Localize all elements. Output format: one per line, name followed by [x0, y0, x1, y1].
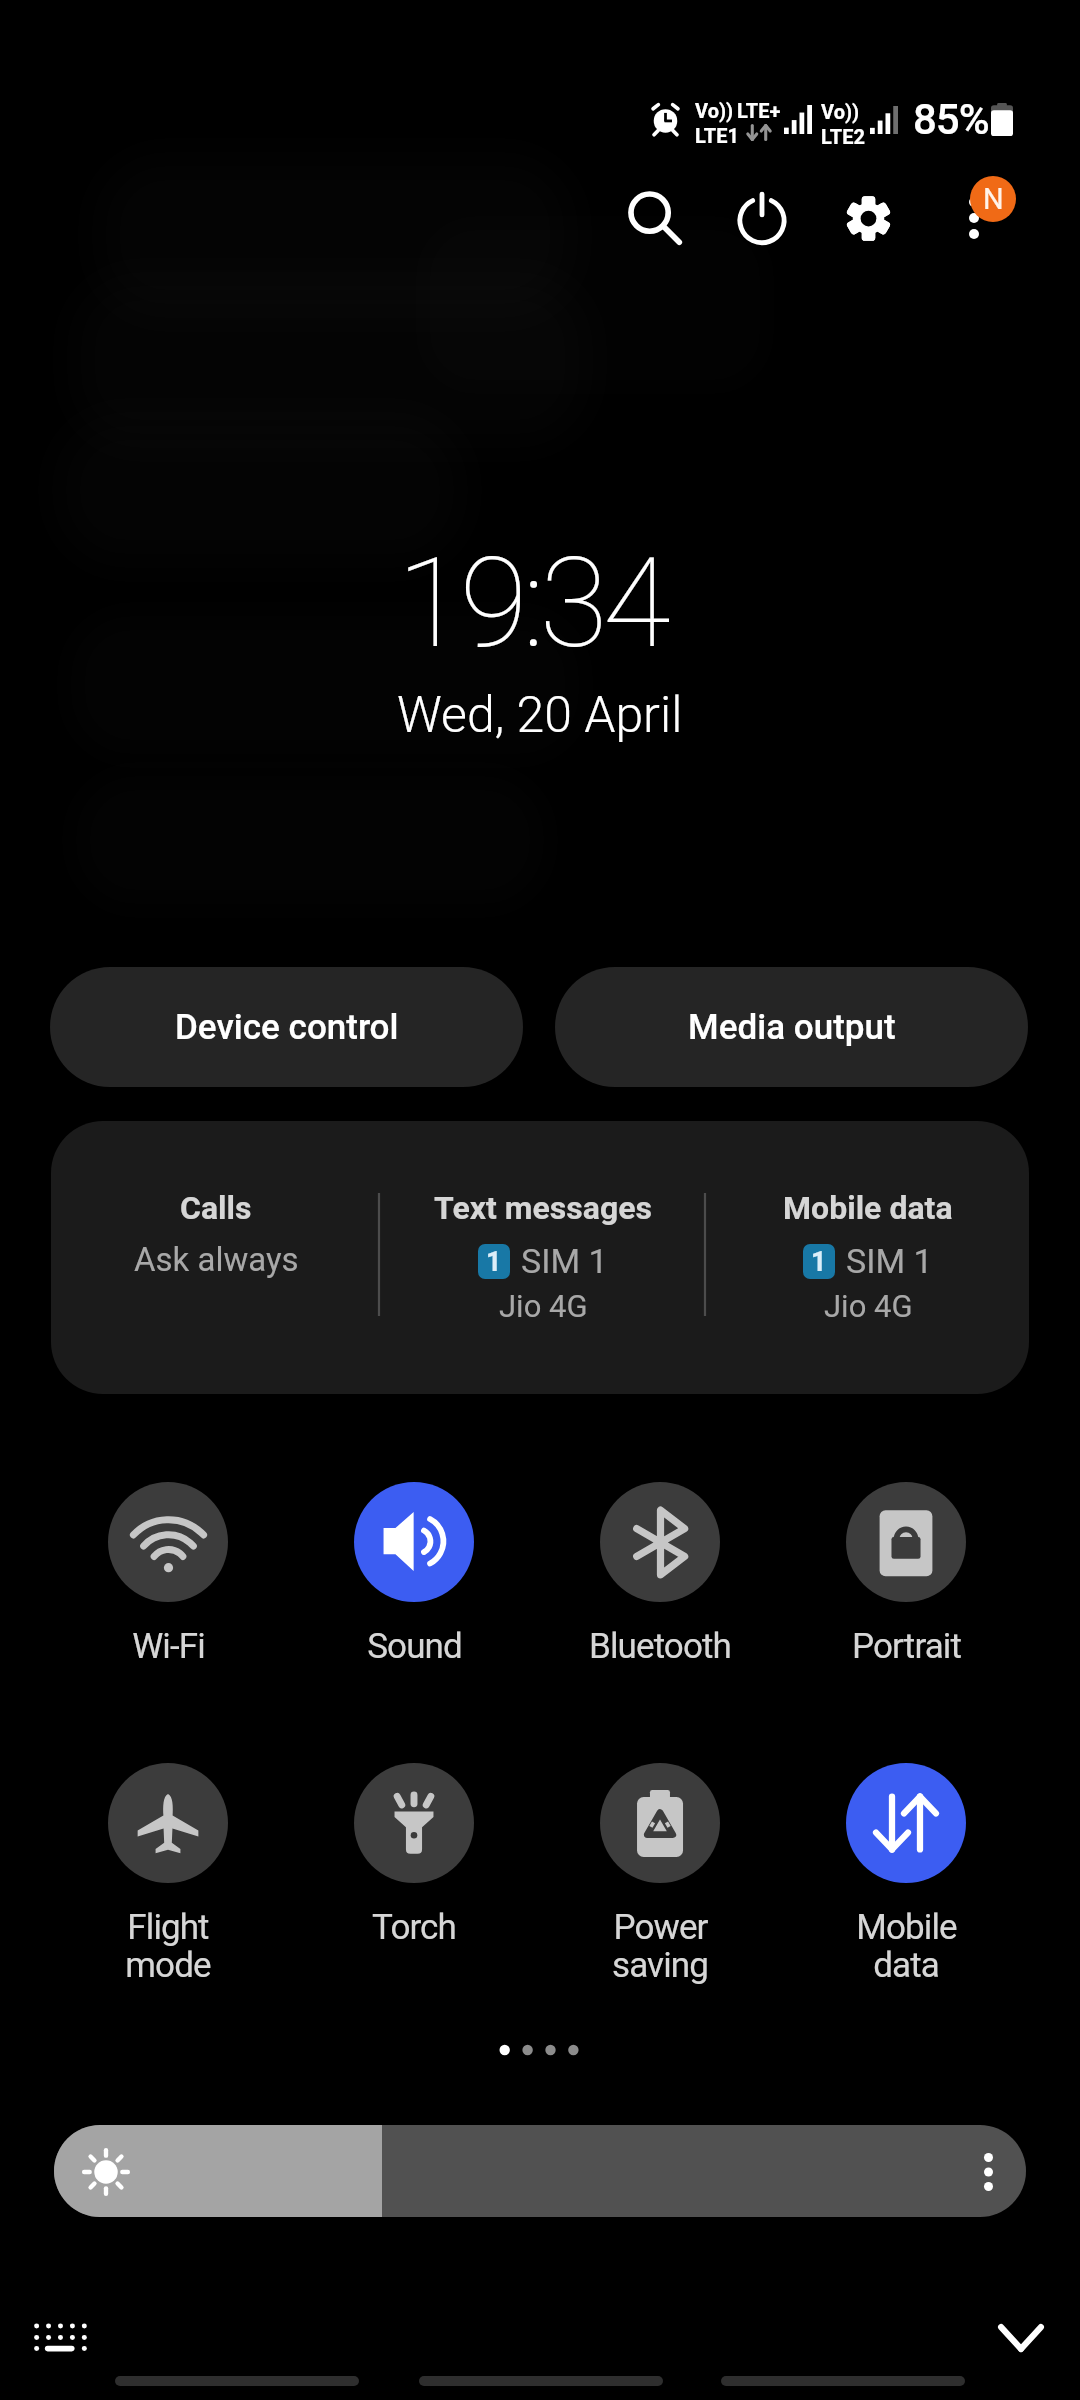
button[interactable]: Flight — [45, 1763, 291, 1989]
button[interactable]: Power off — [710, 166, 814, 270]
staticText: 1 — [486, 1246, 502, 1278]
staticText: mode — [125, 1945, 211, 1986]
button[interactable]: Torch — [291, 1763, 537, 1948]
staticText: Mobile data — [783, 1189, 953, 1227]
staticText: 19:34 — [397, 531, 666, 676]
staticText: data — [873, 1945, 939, 1986]
button[interactable]: More options — [922, 166, 1026, 270]
staticText: 1 — [811, 1246, 827, 1278]
staticText: Bluetooth — [589, 1626, 731, 1667]
staticText: SIM 1 — [846, 1241, 933, 1281]
staticText: Text messages — [434, 1189, 652, 1227]
staticText: LTE2 — [821, 125, 865, 148]
staticText: Media output — [688, 1007, 896, 1048]
staticText: N — [983, 182, 1004, 216]
button[interactable]: Sound — [291, 1482, 537, 1667]
staticText: saving — [612, 1945, 708, 1986]
staticText: Vo)) — [821, 100, 860, 123]
staticText: Ask always — [134, 1240, 299, 1279]
staticText: LTE1 — [695, 124, 739, 147]
staticText: Device control — [175, 1007, 399, 1048]
button[interactable]: Device control — [50, 967, 523, 1087]
staticText: LTE+ — [737, 99, 781, 122]
button[interactable]: Mobile — [783, 1763, 1029, 1989]
staticText: 85% — [913, 95, 989, 144]
button[interactable]: Settings — [816, 166, 920, 270]
button[interactable]: Wi-Fi — [45, 1482, 291, 1667]
button[interactable]: Keyboard — [14, 2301, 106, 2371]
staticText: Wed, 20 April — [397, 686, 683, 745]
button[interactable]: Search — [603, 166, 707, 270]
staticText: Power — [613, 1907, 708, 1948]
staticText: SIM 1 — [521, 1241, 608, 1281]
button[interactable]: Brightness — [54, 2125, 1026, 2217]
staticText: Sound — [367, 1626, 462, 1667]
staticText: Vo)) — [695, 99, 734, 122]
button[interactable]: Collapse panel — [976, 2298, 1066, 2378]
button[interactable]: Power — [537, 1763, 783, 1989]
staticText: Flight — [127, 1907, 209, 1948]
button[interactable]: Calls — [52, 1189, 380, 1279]
staticText: Jio 4G — [824, 1288, 913, 1324]
button[interactable]: Media output — [555, 967, 1028, 1087]
button[interactable]: Mobile data — [705, 1189, 1029, 1324]
button[interactable]: Bluetooth — [537, 1482, 783, 1667]
staticText: Torch — [372, 1907, 456, 1948]
staticText: Wi-Fi — [132, 1626, 205, 1667]
staticText: Mobile — [856, 1907, 957, 1948]
button[interactable]: Text messages — [380, 1189, 706, 1324]
staticText: Jio 4G — [499, 1288, 588, 1324]
staticText: Portrait — [852, 1626, 961, 1667]
button[interactable]: Portrait — [783, 1482, 1029, 1667]
staticText: Calls — [180, 1189, 252, 1227]
